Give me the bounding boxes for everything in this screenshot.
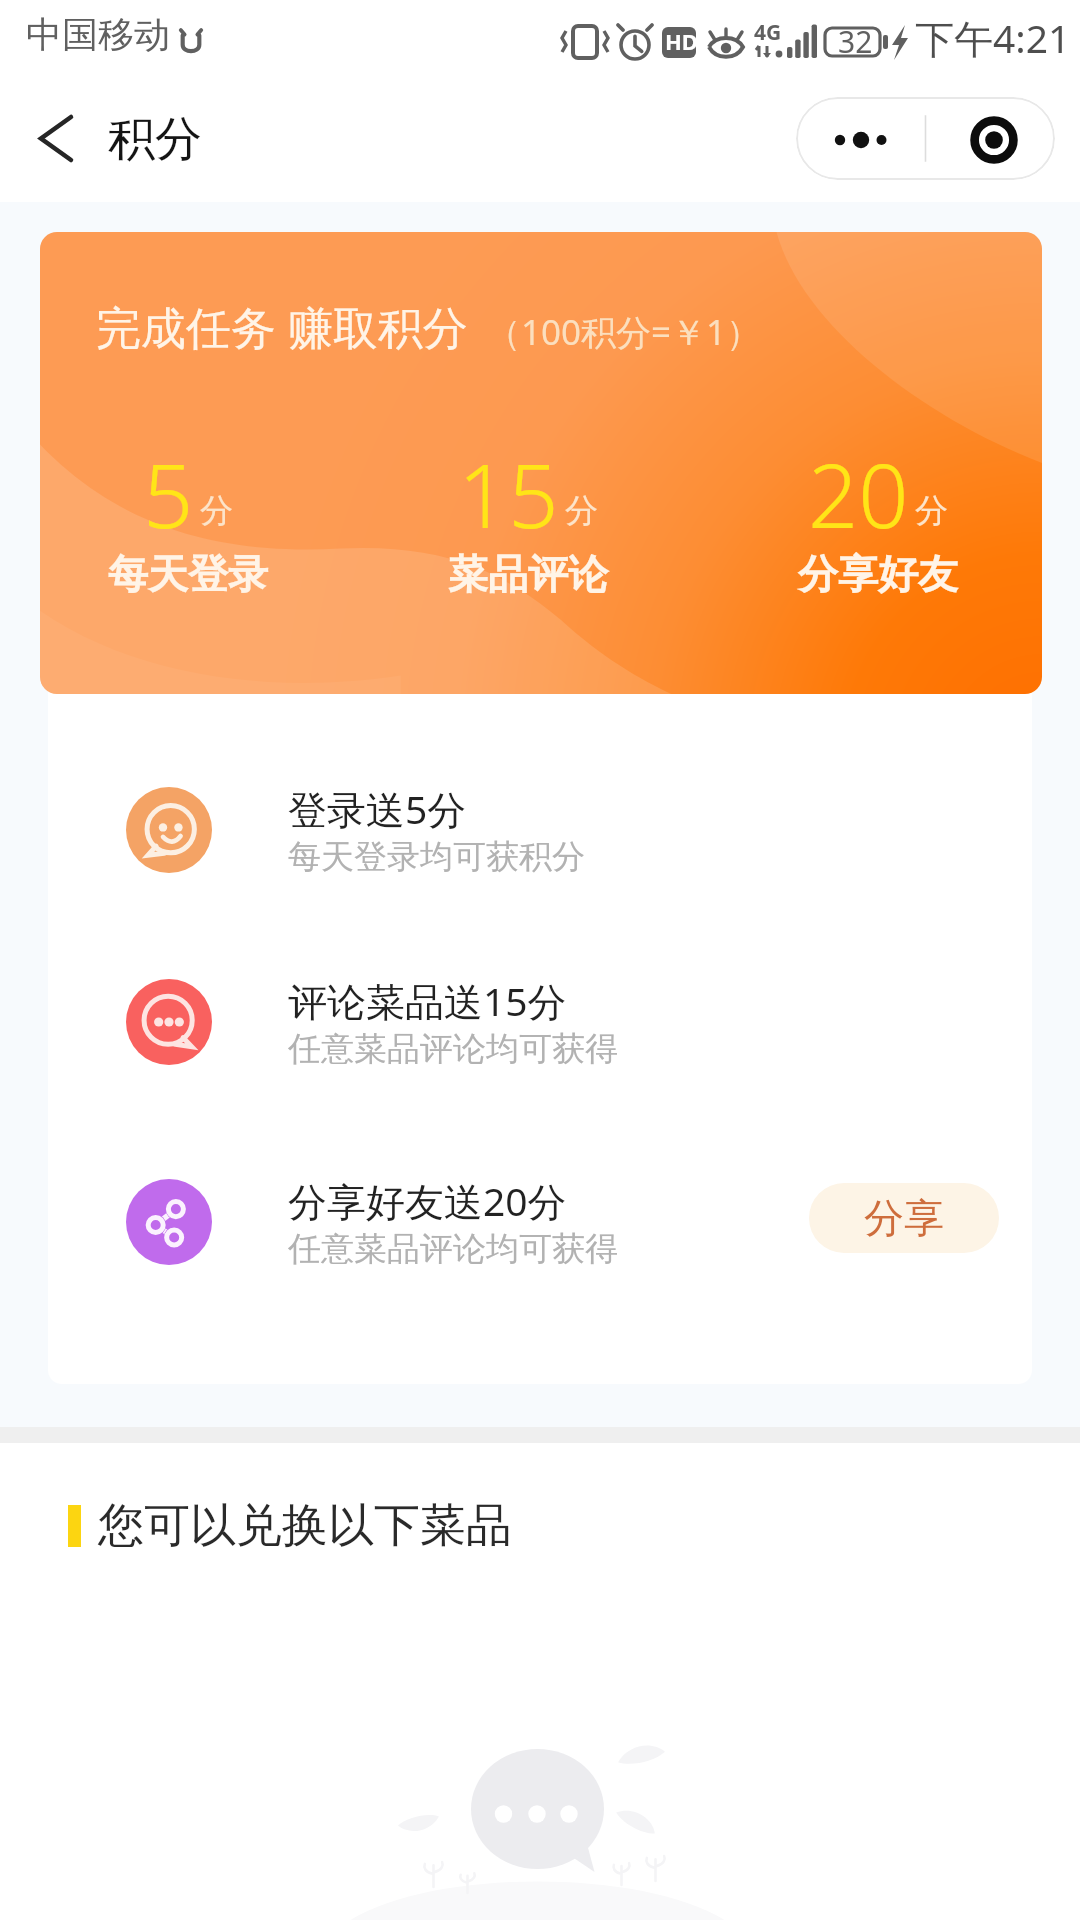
staticText: 4G — [754, 18, 782, 47]
button[interactable]: Back — [2, 91, 110, 186]
staticText: 每天登录 — [108, 549, 268, 599]
staticText: 分享好友 — [798, 549, 958, 599]
staticText: 完成任务 赚取积分 — [96, 296, 468, 357]
staticText: 分 — [915, 490, 948, 532]
staticText: 您可以兑换以下菜品 — [98, 1497, 512, 1555]
staticText: 积分 — [108, 110, 202, 169]
staticText: 15 — [458, 434, 559, 554]
staticText: 5 — [143, 434, 194, 554]
staticText: （100积分=￥1） — [486, 308, 762, 356]
staticText: 每天登录均可获积分 — [288, 836, 585, 878]
staticText: 下午4:21 — [915, 11, 1071, 64]
staticText: 20 — [808, 434, 909, 554]
staticText: HD — [665, 26, 698, 56]
staticText: 分享好友送20分 — [288, 1174, 567, 1227]
staticText: 分 — [565, 490, 598, 532]
button[interactable]: Close — [926, 97, 1055, 180]
staticText: 任意菜品评论均可获得 — [288, 1228, 618, 1270]
staticText: 32 — [838, 21, 873, 62]
button[interactable]: 评论菜品送15分 — [48, 926, 1032, 1118]
button[interactable]: More — [796, 97, 925, 180]
button[interactable]: 登录送5分 — [48, 734, 1032, 926]
button[interactable]: 分享 — [809, 1183, 999, 1253]
staticText: 菜品评论 — [448, 549, 608, 599]
button[interactable]: 分享好友送20分 — [48, 1126, 1032, 1318]
staticText: 分享 — [864, 1193, 944, 1243]
staticText: 评论菜品送15分 — [288, 974, 567, 1027]
staticText: 任意菜品评论均可获得 — [288, 1028, 618, 1070]
staticText: 登录送5分 — [288, 782, 467, 835]
staticText: 中国移动 — [26, 12, 170, 57]
staticText: 分 — [200, 490, 233, 532]
